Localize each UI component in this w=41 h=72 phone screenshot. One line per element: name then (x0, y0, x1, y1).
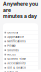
button[interactable]: Focus (3, 52, 38, 57)
staticText: Sounds (7, 49, 18, 52)
button[interactable]: General (3, 30, 38, 35)
button[interactable]: Privacy (3, 44, 38, 48)
staticText: Anywhere you are (3, 1, 38, 13)
staticText: Siri & Search (7, 66, 26, 69)
staticText: minutes a day (3, 13, 37, 19)
button[interactable]: Siri & Search (3, 66, 38, 70)
staticText: Notifications (7, 40, 25, 43)
button[interactable]: Appearance (3, 35, 38, 39)
staticText: Appearance (7, 35, 24, 39)
staticText: Face ID (7, 71, 18, 72)
button[interactable]: Accessibility (3, 61, 38, 65)
staticText: Accessibility (7, 62, 25, 65)
staticText: Privacy (7, 44, 15, 47)
staticText: Screen Time (7, 57, 26, 61)
button[interactable]: Notifications (3, 39, 38, 43)
button[interactable]: Screen Time (3, 57, 38, 61)
button[interactable]: Face ID (3, 70, 38, 72)
staticText: Focus (7, 53, 15, 56)
staticText: General (7, 31, 18, 34)
button[interactable]: Sounds (3, 48, 38, 52)
